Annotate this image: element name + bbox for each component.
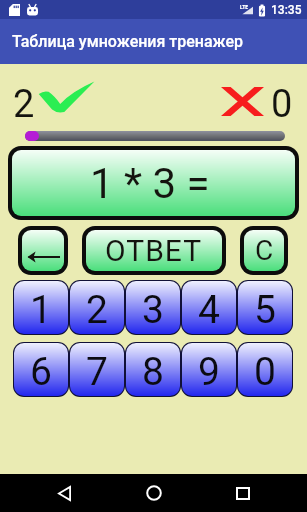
button[interactable]: Recents xyxy=(198,474,288,512)
staticText: ОТВЕТ xyxy=(105,233,203,268)
button[interactable]: C xyxy=(240,226,288,275)
button[interactable]: 9 xyxy=(182,343,236,396)
button[interactable]: Backspace xyxy=(18,226,68,275)
staticText: 8 xyxy=(142,349,164,395)
staticText: 6 xyxy=(30,349,52,395)
button[interactable]: 7 xyxy=(70,343,124,396)
button[interactable]: 4 xyxy=(182,281,236,334)
staticText: 0 xyxy=(254,349,276,395)
button[interactable]: 2 xyxy=(70,281,124,334)
button[interactable]: Home xyxy=(109,474,199,512)
staticText: 1 * 3 = xyxy=(90,159,210,208)
button[interactable]: 1 xyxy=(14,281,68,334)
staticText: 3 xyxy=(142,287,164,333)
staticText: 13:35 xyxy=(271,3,302,17)
button[interactable]: 8 xyxy=(126,343,180,396)
button[interactable]: 3 xyxy=(126,281,180,334)
staticText: C xyxy=(255,234,274,267)
button[interactable]: Таблица умножения тренажер xyxy=(0,19,307,64)
staticText: 4 xyxy=(198,287,220,333)
button[interactable]: 1 * 3 = xyxy=(12,150,295,216)
button[interactable]: 6 xyxy=(14,343,68,396)
staticText: 5 xyxy=(254,287,276,333)
button[interactable]: 5 xyxy=(238,281,292,334)
staticText: LTE xyxy=(240,4,249,10)
button[interactable]: 0 xyxy=(238,343,292,396)
button[interactable]: ОТВЕТ xyxy=(82,226,226,275)
staticText: 9 xyxy=(198,349,220,395)
staticText: Таблица умножения тренажер xyxy=(12,32,244,51)
button[interactable]: Back xyxy=(19,474,109,512)
staticText: 7 xyxy=(86,349,108,395)
staticText: 0 xyxy=(271,82,293,127)
staticText: 2 xyxy=(13,82,35,127)
staticText: 1 xyxy=(30,287,52,333)
staticText: 2 xyxy=(86,287,108,333)
